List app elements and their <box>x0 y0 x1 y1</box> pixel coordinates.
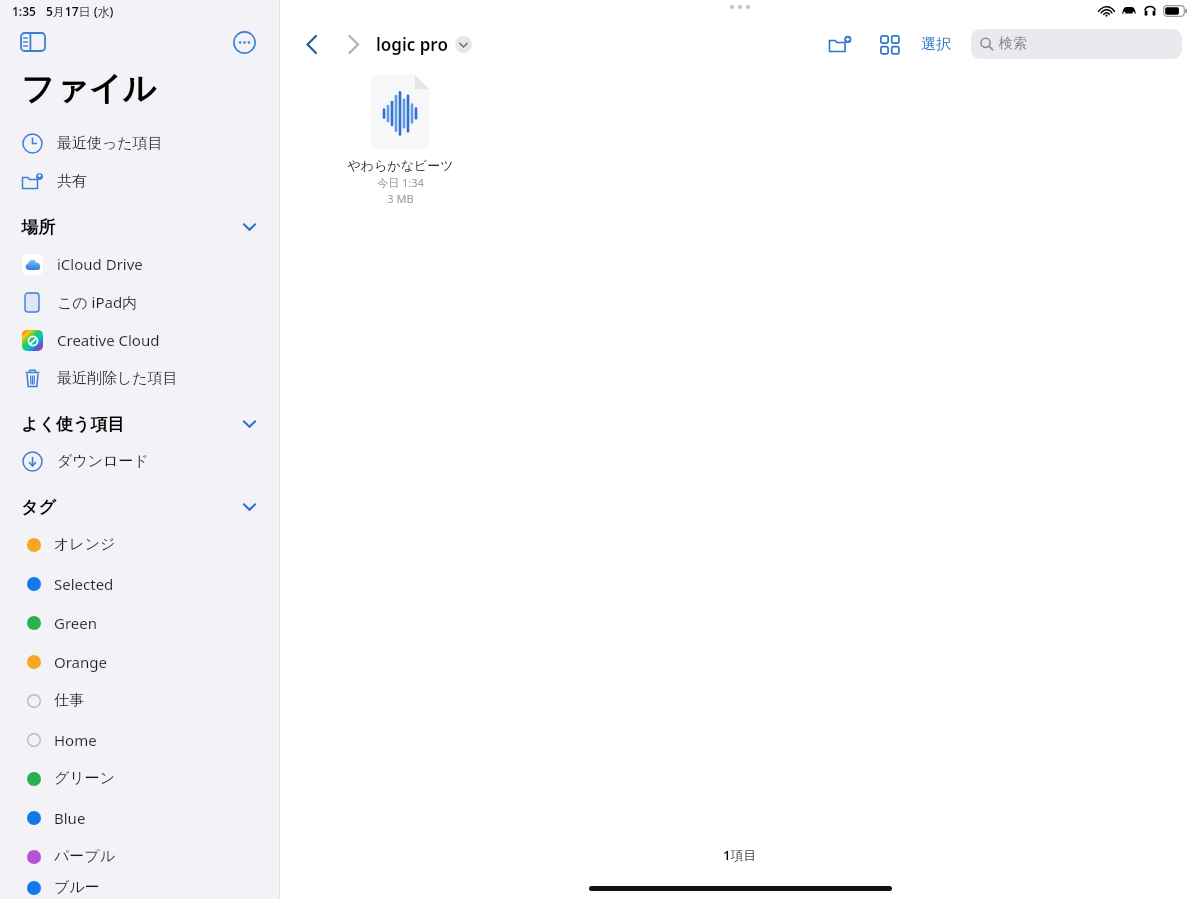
staticText: オレンジ <box>54 535 116 554</box>
button[interactable]: Selected <box>0 564 280 603</box>
button[interactable]: logic pro <box>376 33 472 56</box>
button[interactable]: 最近使った項目 <box>0 124 280 162</box>
button[interactable]: この iPad内 <box>0 283 280 321</box>
staticText: Orange <box>54 652 107 672</box>
staticText: 場所 <box>21 217 55 238</box>
button[interactable]: Back <box>294 27 328 61</box>
staticText: パープル <box>54 847 116 866</box>
staticText: 最近使った項目 <box>57 134 163 153</box>
staticText: グリーン <box>54 769 116 788</box>
button[interactable]: ブルー <box>0 876 280 899</box>
button[interactable]: パープル <box>0 837 280 876</box>
staticText: 3 MB <box>387 191 414 206</box>
staticText: 選択 <box>921 35 951 54</box>
button[interactable]: グリーン <box>0 759 280 798</box>
button[interactable]: 場所 <box>0 212 280 242</box>
staticText: Creative Cloud <box>57 330 160 350</box>
staticText: この iPad内 <box>57 292 138 312</box>
button[interactable]: Toggle sidebar <box>18 27 48 57</box>
button[interactable]: 検索 <box>971 29 1182 59</box>
button[interactable]: オレンジ <box>0 525 280 564</box>
staticText: 1:35 <box>12 3 36 19</box>
button[interactable]: Grid view <box>873 28 905 60</box>
staticText: 1項目 <box>723 846 757 864</box>
button[interactable]: 仕事 <box>0 681 280 720</box>
staticText: Blue <box>54 808 86 828</box>
staticText: 検索 <box>999 35 1027 53</box>
staticText: 最近削除した項目 <box>57 369 178 388</box>
button[interactable]: よく使う項目 <box>0 409 280 439</box>
button[interactable]: 最近削除した項目 <box>0 359 280 397</box>
staticText: ブルー <box>54 878 100 897</box>
button[interactable]: More options <box>230 28 258 56</box>
button[interactable]: 選択 <box>919 35 953 54</box>
button[interactable]: ダウンロード <box>0 442 280 480</box>
staticText: ファイル <box>21 68 157 110</box>
staticText: 仕事 <box>54 691 84 710</box>
button[interactable]: Orange <box>0 642 280 681</box>
staticText: 共有 <box>57 172 87 191</box>
staticText: 5月17日 (水) <box>46 3 114 19</box>
staticText: Selected <box>54 574 114 594</box>
staticText: ダウンロード <box>57 452 149 471</box>
button[interactable]: やわらかなビーツ <box>340 75 460 206</box>
staticText: よく使う項目 <box>21 414 125 435</box>
staticText: iCloud Drive <box>57 254 143 274</box>
button[interactable]: Blue <box>0 798 280 837</box>
staticText: logic pro <box>376 33 448 56</box>
button[interactable]: Creative Cloud <box>0 321 280 359</box>
button[interactable]: Green <box>0 603 280 642</box>
staticText: Home <box>54 730 97 750</box>
button[interactable]: Forward <box>336 27 370 61</box>
button[interactable]: New folder <box>823 27 857 61</box>
button[interactable]: iCloud Drive <box>0 245 280 283</box>
button[interactable]: 共有 <box>0 162 280 200</box>
staticText: Green <box>54 613 98 633</box>
button[interactable]: タグ <box>0 492 280 522</box>
button[interactable]: Home <box>0 720 280 759</box>
staticText: 今日 1:34 <box>377 175 424 190</box>
staticText: やわらかなビーツ <box>347 157 454 173</box>
staticText: タグ <box>21 497 56 518</box>
